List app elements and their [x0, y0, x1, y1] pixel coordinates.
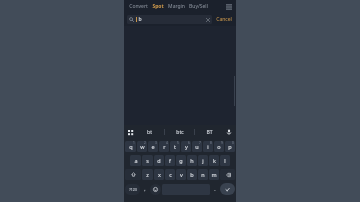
button[interactable]: Cancel [215, 16, 233, 23]
button[interactable]: 6 [181, 141, 191, 152]
staticText: o [217, 143, 221, 150]
staticText: x [158, 171, 161, 178]
button[interactable]: b [187, 169, 197, 180]
staticText: p [228, 143, 232, 150]
button[interactable]: Margin [166, 2, 187, 11]
staticText: m [211, 171, 217, 178]
staticText: BT [206, 129, 213, 136]
button[interactable]: 3 [148, 141, 158, 152]
button[interactable]: Menu [224, 2, 233, 11]
button[interactable]: h [187, 155, 197, 166]
staticText: Margin [168, 3, 185, 10]
staticText: z [146, 171, 149, 178]
staticText: 9 [221, 141, 223, 145]
staticText: r [163, 143, 166, 150]
staticText: 0 [232, 141, 234, 145]
button[interactable]: b [127, 15, 212, 24]
button[interactable]: a [130, 155, 141, 166]
button[interactable]: n [198, 169, 208, 180]
button[interactable]: l [220, 155, 230, 166]
staticText: v [180, 171, 183, 178]
staticText: q [129, 143, 133, 150]
staticText: Convert [129, 3, 148, 10]
staticText: i [207, 143, 209, 150]
button[interactable]: x [154, 169, 164, 180]
button[interactable]: bt [135, 125, 164, 139]
staticText: g [179, 157, 183, 164]
button[interactable]: f [165, 155, 175, 166]
staticText: w [140, 143, 145, 150]
staticText: , [144, 186, 146, 193]
button[interactable]: Keyboard options [126, 128, 135, 137]
button[interactable]: Enter [220, 183, 235, 195]
staticText: u [195, 143, 199, 150]
button[interactable]: . [211, 184, 219, 195]
staticText: ?123 [129, 187, 137, 192]
staticText: 3 [155, 141, 157, 145]
staticText: l [224, 157, 226, 164]
staticText: b [190, 171, 194, 178]
staticText: . [214, 186, 216, 193]
staticText: n [201, 171, 205, 178]
button[interactable]: 1 [125, 141, 136, 152]
button[interactable]: v [176, 169, 186, 180]
staticText: s [146, 157, 149, 164]
button[interactable]: Shift [125, 169, 141, 180]
staticText: 6 [188, 141, 190, 145]
staticText: f [169, 157, 171, 164]
button[interactable]: 2 [137, 141, 147, 152]
button[interactable]: Voice input [224, 127, 234, 137]
button[interactable]: btc [165, 125, 194, 139]
staticText: 5 [177, 141, 179, 145]
button[interactable]: 5 [170, 141, 180, 152]
button[interactable]: g [176, 155, 186, 166]
staticText: y [185, 143, 188, 150]
button[interactable]: c [165, 169, 175, 180]
button[interactable]: 7 [192, 141, 202, 152]
staticText: btc [176, 129, 184, 136]
button[interactable]: 8 [203, 141, 213, 152]
button[interactable]: s [142, 155, 153, 166]
staticText: Spot [152, 3, 164, 10]
button[interactable]: m [209, 169, 219, 180]
staticText: 7 [199, 141, 201, 145]
staticText: 1 [133, 141, 135, 145]
staticText: b [138, 16, 142, 23]
button[interactable]: BT [195, 125, 224, 139]
staticText: 8 [210, 141, 212, 145]
staticText: bt [147, 129, 152, 136]
button[interactable]: 0 [225, 141, 235, 152]
button[interactable]: Emoji [150, 184, 161, 195]
staticText: Buy/Sell [189, 3, 208, 10]
button[interactable]: d [154, 155, 164, 166]
staticText: h [190, 157, 194, 164]
staticText: t [174, 143, 176, 150]
button[interactable]: z [142, 169, 153, 180]
staticText: 2 [144, 141, 146, 145]
button[interactable]: j [198, 155, 208, 166]
button[interactable]: Convert [127, 2, 150, 11]
button[interactable]: 4 [159, 141, 169, 152]
staticText: 4 [166, 141, 168, 145]
staticText: e [151, 143, 155, 150]
button[interactable]: Clear [205, 17, 210, 22]
staticText: d [157, 157, 161, 164]
button[interactable]: 9 [214, 141, 224, 152]
button[interactable]: k [209, 155, 219, 166]
button[interactable]: ?123 [125, 184, 140, 195]
staticText: k [213, 157, 216, 164]
staticText: Cancel [216, 16, 232, 23]
button[interactable]: Buy/Sell [187, 2, 210, 11]
staticText: c [169, 171, 172, 178]
button[interactable]: Backspace [220, 169, 235, 180]
button[interactable]: Spot [150, 2, 166, 11]
staticText: j [202, 157, 204, 164]
staticText: a [134, 157, 138, 164]
button[interactable]: , [141, 184, 149, 195]
